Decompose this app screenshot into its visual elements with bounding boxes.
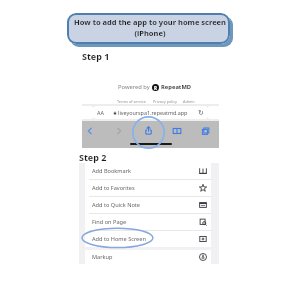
button[interactable]: AA bbox=[93, 106, 208, 119]
button[interactable]: Share bbox=[144, 126, 153, 135]
staticText: ↻ bbox=[198, 109, 204, 117]
staticText: Admin bbox=[183, 99, 195, 104]
staticText: Step 1 bbox=[82, 50, 110, 62]
staticText: liveyourspa1.repeatmd.app bbox=[118, 109, 188, 116]
staticText: AA bbox=[97, 109, 104, 116]
button[interactable]: Back bbox=[85, 126, 95, 136]
button[interactable]: Find on Page bbox=[85, 214, 211, 230]
button[interactable]: Add Bookmark bbox=[85, 163, 211, 179]
button[interactable]: Add to Home Screen bbox=[85, 231, 211, 247]
staticText: Privacy policy bbox=[153, 99, 177, 104]
staticText: RepeatMD bbox=[161, 83, 192, 91]
button[interactable]: Bookmarks bbox=[172, 126, 182, 136]
button[interactable]: Forward bbox=[114, 126, 124, 136]
button[interactable]: How to add the app to your home screen (… bbox=[67, 13, 230, 44]
button[interactable]: Markup bbox=[85, 250, 211, 264]
staticText: Add to Favorites bbox=[92, 184, 135, 192]
staticText: R bbox=[154, 85, 157, 91]
button[interactable]: Reload bbox=[197, 109, 205, 117]
staticText: Find on Page bbox=[92, 218, 127, 226]
button[interactable]: Add to Quick Note bbox=[85, 197, 211, 213]
staticText: Add to Home Screen bbox=[92, 235, 146, 243]
button[interactable]: Tabs bbox=[201, 126, 211, 136]
staticText: How to add the app to your home screen (… bbox=[74, 17, 226, 38]
staticText: Add Bookmark bbox=[92, 167, 131, 175]
staticText: Powered by bbox=[118, 83, 150, 91]
button[interactable]: Add to Favorites bbox=[85, 180, 211, 196]
staticText: Terms of service bbox=[117, 99, 146, 104]
staticText: Markup bbox=[92, 253, 113, 261]
staticText: Add to Quick Note bbox=[92, 201, 140, 209]
staticText: Step 2 bbox=[79, 151, 107, 163]
